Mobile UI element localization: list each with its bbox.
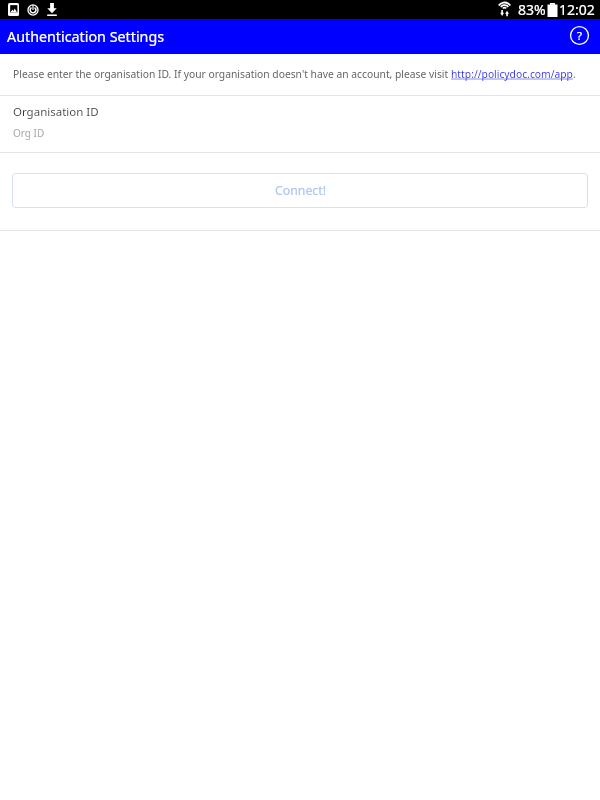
staticText: 12:02: [559, 0, 595, 19]
staticText: ?: [577, 28, 582, 44]
staticText: 83%: [518, 0, 546, 19]
button[interactable]: http://policydoc.com/app: [451, 67, 573, 81]
button[interactable]: Help: [565, 21, 593, 49]
staticText: Please enter the organisation ID. If you…: [13, 67, 451, 81]
staticText: Org ID: [13, 126, 45, 140]
staticText: Organisation ID: [13, 104, 99, 120]
button[interactable]: Connect!: [12, 173, 588, 208]
staticText: Authentication Settings: [7, 27, 165, 46]
staticText: .: [573, 67, 576, 81]
staticText: Connect!: [275, 182, 326, 199]
button[interactable]: Organisation ID: [0, 96, 600, 152]
